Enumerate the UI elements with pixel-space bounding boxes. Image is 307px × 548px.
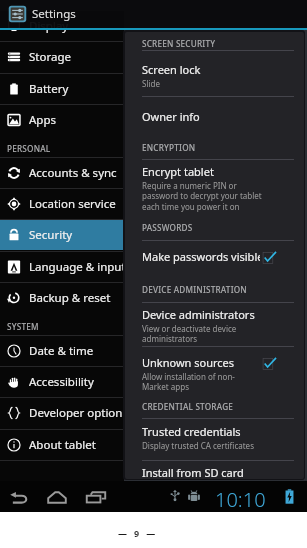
staticText: Storage (29, 49, 71, 65)
staticText: PERSONAL (7, 143, 51, 154)
staticText: Date & time (29, 343, 94, 359)
staticText: Battery (29, 81, 69, 97)
button[interactable]: Language & input (0, 251, 124, 282)
button[interactable]: Home (46, 489, 68, 505)
staticText: Backup & reset (29, 290, 111, 306)
staticText: SCREEN SECURITY (142, 38, 216, 49)
staticText: View or deactivate device administrators (142, 323, 237, 345)
button[interactable]: Back (8, 489, 30, 505)
staticText: CREDENTIAL STORAGE (142, 401, 234, 412)
button[interactable]: Display (0, 10, 124, 41)
button[interactable]: Developer options (0, 397, 124, 428)
staticText: ENCRYPTION (142, 142, 196, 153)
button[interactable]: Settings (0, 0, 307, 27)
staticText: Device administrators (142, 307, 255, 322)
button[interactable]: Backup & reset (0, 282, 124, 313)
button[interactable]: Accessibility (0, 366, 124, 397)
staticText: Accessibility (29, 374, 94, 390)
staticText: 10:10 (215, 486, 266, 513)
staticText: Slide (142, 78, 160, 89)
staticText: Require a numeric PIN or password to dec… (142, 180, 262, 213)
button[interactable]: Recent apps (85, 489, 107, 505)
staticText: Settings (32, 6, 76, 22)
staticText: — 9 — (118, 527, 156, 539)
button[interactable]: Install from SD card (125, 465, 304, 480)
staticText: Location service (29, 196, 116, 212)
staticText: Language & input (29, 259, 124, 275)
staticText: Display (29, 18, 69, 34)
staticText: Unknown sources (142, 355, 235, 370)
staticText: Trusted credentials (142, 424, 241, 439)
staticText: Display trusted CA certificates (142, 440, 254, 451)
staticText: PASSWORDS (142, 222, 193, 233)
button[interactable]: Toggle (262, 251, 280, 265)
staticText: Apps (29, 112, 57, 128)
button[interactable]: Storage (0, 41, 124, 72)
button[interactable]: About tablet (0, 429, 124, 460)
staticText: Owner info (142, 109, 200, 124)
button[interactable]: Apps (0, 104, 124, 135)
button[interactable]: Security (0, 219, 124, 250)
staticText: About tablet (29, 437, 96, 453)
button[interactable]: Screen lock (125, 62, 304, 89)
staticText: Encrypt tablet (142, 164, 214, 179)
button[interactable]: Owner info (125, 109, 304, 124)
staticText: Security (29, 227, 73, 243)
button[interactable]: Battery (0, 73, 124, 104)
staticText: Screen lock (142, 62, 201, 77)
button[interactable]: Toggle (262, 357, 280, 371)
button[interactable]: Unknown sources (125, 355, 304, 393)
staticText: Make passwords visible (142, 249, 260, 264)
button[interactable]: Make passwords visible (125, 249, 304, 264)
staticText: DEVICE ADMINISTRATION (142, 284, 247, 295)
button[interactable]: Encrypt tablet (125, 164, 304, 213)
button[interactable]: Trusted credentials (125, 424, 304, 451)
staticText: Allow installation of non- Market apps (142, 371, 235, 393)
button[interactable]: Accounts & sync (0, 157, 124, 188)
staticText: Accounts & sync (29, 165, 117, 181)
staticText: SYSTEM (7, 321, 39, 332)
staticText: Install from SD card (142, 465, 244, 480)
button[interactable]: Device administrators (125, 307, 304, 345)
button[interactable]: Date & time (0, 335, 124, 366)
button[interactable]: Location service (0, 188, 124, 219)
staticText: Developer options (29, 405, 124, 421)
